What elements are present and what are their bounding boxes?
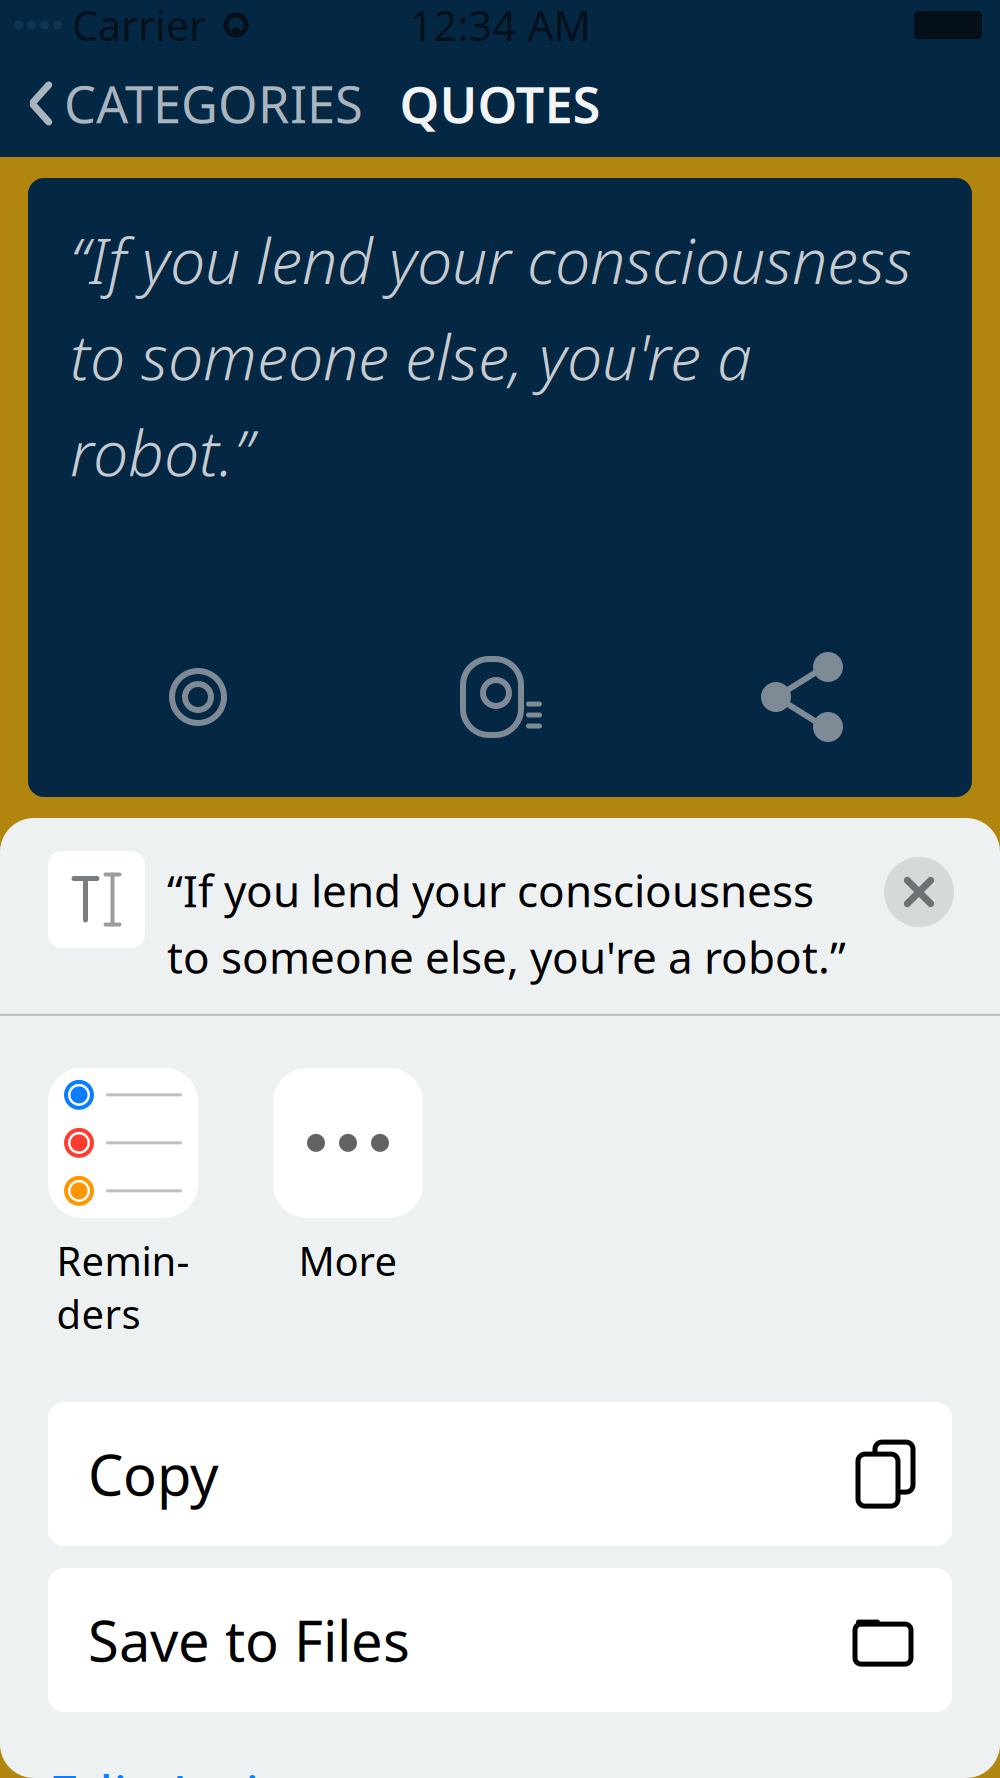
button[interactable]: Copy [48, 1402, 952, 1546]
staticText: “If you lend your consciousness to someo… [70, 218, 912, 494]
staticText: Copy [88, 1437, 219, 1511]
staticText: Save to Files [88, 1603, 410, 1677]
staticText: CATEGORIES [64, 70, 363, 137]
staticText: Reminders [56, 1234, 189, 1340]
button[interactable]: Edit Actions… [0, 1712, 1000, 1778]
button[interactable]: Speak [452, 649, 548, 745]
button[interactable]: Save to Files [48, 1568, 952, 1712]
button[interactable]: Close [878, 851, 960, 933]
staticText: QUOTES [399, 70, 600, 137]
staticText: 12:34 AM [409, 0, 590, 52]
button[interactable]: CATEGORIES [0, 56, 363, 151]
staticText: More [298, 1234, 397, 1287]
button[interactable]: View [150, 667, 246, 727]
staticText: “If you lend your consciousness to someo… [167, 861, 846, 986]
button[interactable]: More [273, 1068, 423, 1287]
button[interactable]: Reminders [48, 1068, 198, 1340]
button[interactable]: Share [754, 649, 850, 745]
staticText: Edit Actions… [48, 1758, 399, 1778]
staticText: Carrier [72, 0, 206, 52]
